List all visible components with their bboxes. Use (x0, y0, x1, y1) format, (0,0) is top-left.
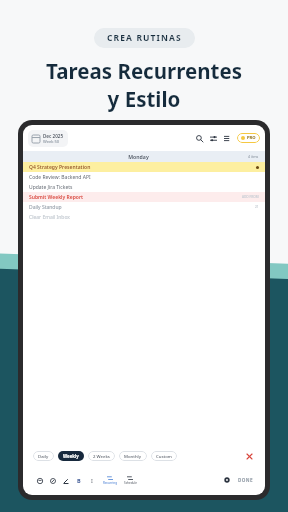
button[interactable]: Emoji (33, 474, 46, 487)
button[interactable]: Tag (46, 474, 59, 487)
button[interactable]: Code Review: Backend API (29, 172, 259, 182)
staticText: 2 Weeks (93, 453, 110, 459)
staticText: I (91, 477, 93, 484)
staticText: Code Review: Backend API (29, 174, 259, 181)
button[interactable]: Recurring (100, 475, 120, 485)
button[interactable]: Clear Email Inbox (29, 212, 259, 222)
button[interactable]: Monday (29, 151, 259, 162)
button[interactable]: Edit list (220, 131, 234, 145)
staticText: 4 itms (248, 154, 259, 159)
button[interactable]: B (72, 474, 85, 487)
staticText: B (77, 477, 81, 484)
staticText: PRO (247, 135, 256, 141)
staticText: Submit Weekly Report (29, 194, 242, 201)
button[interactable]: I (85, 474, 98, 487)
button[interactable]: Filter (206, 131, 220, 145)
button[interactable]: Update Jira Tickets (29, 182, 259, 192)
staticText: Clear Email Inbox (29, 214, 259, 221)
staticText: Schedule (124, 481, 137, 485)
button[interactable]: Settings (221, 474, 233, 486)
staticText: ADD FROM (242, 195, 259, 199)
button[interactable]: Weekly (63, 453, 79, 459)
staticText: Q4 Strategy Presentation (29, 164, 256, 171)
button[interactable]: Monthly (124, 453, 142, 459)
staticText: Monthly (124, 453, 142, 459)
staticText: Daily Standup (29, 204, 255, 211)
staticText: DONE (238, 477, 253, 483)
button[interactable]: 2 Weeks (93, 453, 110, 459)
staticText: y Estilo (0, 85, 288, 113)
button[interactable]: PRO (241, 135, 256, 141)
button[interactable]: DONE (236, 477, 255, 483)
button[interactable]: Close (243, 450, 255, 462)
button[interactable]: Daily Standup (29, 202, 259, 212)
button[interactable]: Daily (38, 453, 49, 459)
staticText: Week 50 (43, 139, 60, 144)
button[interactable]: Highlight (59, 474, 72, 487)
button[interactable]: Custom (156, 453, 172, 459)
button[interactable]: Search (192, 131, 206, 145)
button[interactable]: CREA RUTINAS (107, 32, 182, 44)
button[interactable]: Submit Weekly Report (29, 192, 259, 202)
staticText: Custom (156, 453, 172, 459)
staticText: Recurring (103, 481, 118, 485)
staticText: Daily (38, 453, 49, 459)
staticText: Tareas Recurrentes (0, 57, 288, 85)
button[interactable]: Schedule (120, 475, 140, 485)
staticText: Update Jira Tickets (29, 184, 259, 191)
staticText: Dec 2025 (43, 133, 64, 139)
button[interactable]: Dec 2025 (32, 133, 64, 144)
button[interactable]: Q4 Strategy Presentation (29, 162, 259, 172)
staticText: Weekly (63, 453, 79, 459)
staticText: CREA RUTINAS (107, 32, 182, 44)
staticText: Monday (29, 153, 248, 160)
staticText: 21 (255, 205, 259, 209)
